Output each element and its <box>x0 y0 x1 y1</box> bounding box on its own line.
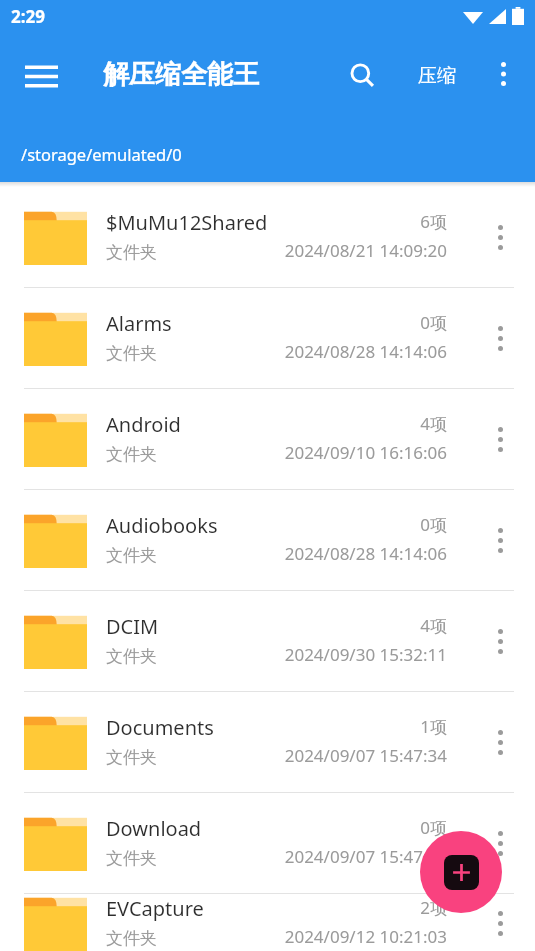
staticText: $MuMu12Shared <box>106 209 268 236</box>
staticText: 2项 <box>420 896 447 919</box>
staticText: 文件夹 <box>106 747 157 768</box>
button[interactable]: Item options <box>478 518 522 562</box>
staticText: 0项 <box>420 311 447 334</box>
staticText: 6项 <box>420 210 447 233</box>
button[interactable]: Alarms <box>0 288 535 388</box>
button[interactable]: Item options <box>478 215 522 259</box>
button[interactable]: Android <box>0 389 535 489</box>
staticText: 2024/08/28 14:14:06 <box>284 542 447 565</box>
button[interactable]: Item options <box>478 417 522 461</box>
staticText: 解压缩全能王 <box>103 58 259 91</box>
staticText: 文件夹 <box>106 545 157 566</box>
button[interactable]: Item options <box>478 720 522 764</box>
button[interactable]: Download <box>0 793 535 893</box>
button[interactable]: More options <box>481 52 525 96</box>
button[interactable]: Item options <box>478 821 522 865</box>
button[interactable]: Item options <box>478 901 522 945</box>
staticText: Documents <box>106 714 214 741</box>
staticText: 4项 <box>420 412 447 435</box>
button[interactable]: Add <box>420 831 502 913</box>
staticText: 2024/09/12 10:21:03 <box>284 925 447 948</box>
button[interactable]: Item options <box>478 619 522 663</box>
staticText: 2:29 <box>11 5 45 28</box>
staticText: Android <box>106 411 181 438</box>
staticText: 文件夹 <box>106 444 157 465</box>
staticText: 0项 <box>420 513 447 536</box>
staticText: DCIM <box>106 613 159 640</box>
button[interactable]: Documents <box>0 692 535 792</box>
staticText: 文件夹 <box>106 343 157 364</box>
staticText: 1项 <box>420 715 447 738</box>
staticText: 2024/09/10 16:16:06 <box>284 441 447 464</box>
staticText: 2024/08/28 14:14:06 <box>284 340 447 363</box>
staticText: Audiobooks <box>106 512 218 539</box>
button[interactable]: EVCapture <box>0 894 535 951</box>
button[interactable]: DCIM <box>0 591 535 691</box>
staticText: 2024/09/07 15:47:34 <box>284 744 447 767</box>
button[interactable]: Search <box>338 52 386 100</box>
staticText: 0项 <box>420 816 447 839</box>
staticText: Alarms <box>106 310 172 337</box>
staticText: 2024/09/07 15:47:34 <box>284 845 447 868</box>
staticText: 2024/09/30 15:32:11 <box>284 643 447 666</box>
staticText: EVCapture <box>106 895 204 922</box>
staticText: 文件夹 <box>106 646 157 667</box>
staticText: 文件夹 <box>106 848 157 869</box>
staticText: 压缩 <box>418 64 456 88</box>
staticText: 文件夹 <box>106 242 157 263</box>
staticText: Download <box>106 815 202 842</box>
button[interactable]: 压缩 <box>406 52 468 100</box>
button[interactable]: Menu <box>17 52 65 100</box>
staticText: 文件夹 <box>106 928 157 949</box>
button[interactable]: $MuMu12Shared <box>0 187 535 287</box>
button[interactable]: Item options <box>478 316 522 360</box>
button[interactable]: Audiobooks <box>0 490 535 590</box>
staticText: /storage/emulated/0 <box>21 143 182 165</box>
staticText: 4项 <box>420 614 447 637</box>
staticText: 2024/08/21 14:09:20 <box>284 239 447 262</box>
